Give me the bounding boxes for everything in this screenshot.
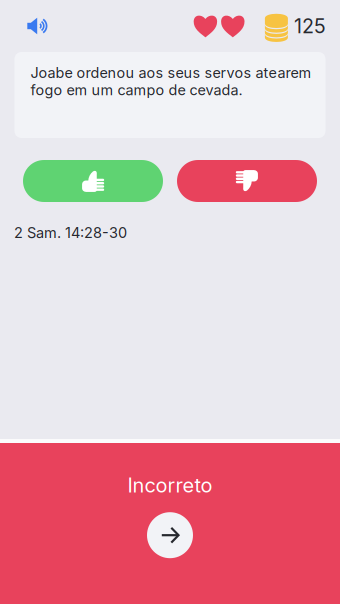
staticText: 125 — [294, 14, 326, 38]
staticText: Joabe ordenou aos seus servos atearem fo… — [30, 64, 311, 99]
staticText: 2 Sam. 14:28-30 — [14, 224, 127, 242]
button[interactable]: False — [177, 160, 317, 202]
staticText: Incorreto — [127, 473, 212, 497]
button[interactable]: Play audio — [0, 7, 58, 44]
button[interactable]: Next question — [147, 512, 193, 558]
button[interactable]: True — [23, 160, 163, 202]
